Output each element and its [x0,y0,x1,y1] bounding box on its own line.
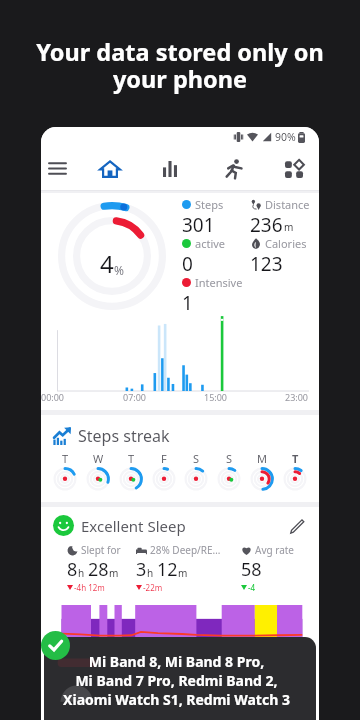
staticText: T [128,451,135,466]
staticText: Avg rate [255,543,295,557]
staticText: 58 [241,557,262,582]
staticText: 00:00 [41,391,65,403]
staticText: 28% Deep/RE… [150,543,221,557]
button[interactable]: Home [88,147,132,190]
button[interactable]: More [272,147,316,190]
staticText: M [257,451,267,466]
staticText: W [93,451,104,466]
staticText: 301 [182,212,215,236]
staticText: S [193,451,200,466]
staticText: Mi Band 8, Mi Band 8 Pro, Mi Band 7 Pro,… [63,652,290,709]
staticText: Steps [195,197,224,212]
staticText: 23:00 [285,391,309,403]
staticText: 0 [182,251,193,275]
staticText: 8 [67,557,78,582]
staticText: % [114,262,124,278]
button[interactable]: Menu [41,147,79,190]
staticText: -4 [248,582,256,593]
staticText: Your data stored only on your phone [36,36,324,95]
staticText: 1 [182,290,193,313]
staticText: active [195,236,226,251]
staticText: Slept for [81,543,121,557]
staticText: 15:00 [204,391,228,403]
staticText: T [292,451,299,466]
staticText: Distance [265,197,310,212]
button[interactable]: Workout [211,147,255,190]
staticText: 12 [157,557,178,582]
staticText: 4 [100,247,114,280]
staticText: 07:00 [123,391,147,403]
staticText: -4h 12m [74,582,105,593]
staticText: m [178,566,188,580]
staticText: 90% [275,130,296,144]
button[interactable]: Supported devices [41,631,70,660]
staticText: m [284,220,294,234]
button[interactable]: Edit [287,516,307,536]
staticText: Steps streak [78,425,170,447]
staticText: 28 [88,557,109,582]
staticText: S [226,451,233,466]
staticText: Intensive [195,275,243,290]
staticText: 123 [250,251,283,275]
staticText: 3 [136,557,147,582]
staticText: Excellent Sleep [81,516,186,536]
staticText: T [62,451,69,466]
staticText: 236 [250,212,283,236]
button[interactable]: Statistics [148,147,192,190]
staticText: -22m [143,582,163,593]
staticText: Calories [265,236,307,251]
staticText: m [109,566,119,580]
staticText: h [147,566,154,580]
staticText: F [161,451,167,466]
staticText: h [78,566,85,580]
